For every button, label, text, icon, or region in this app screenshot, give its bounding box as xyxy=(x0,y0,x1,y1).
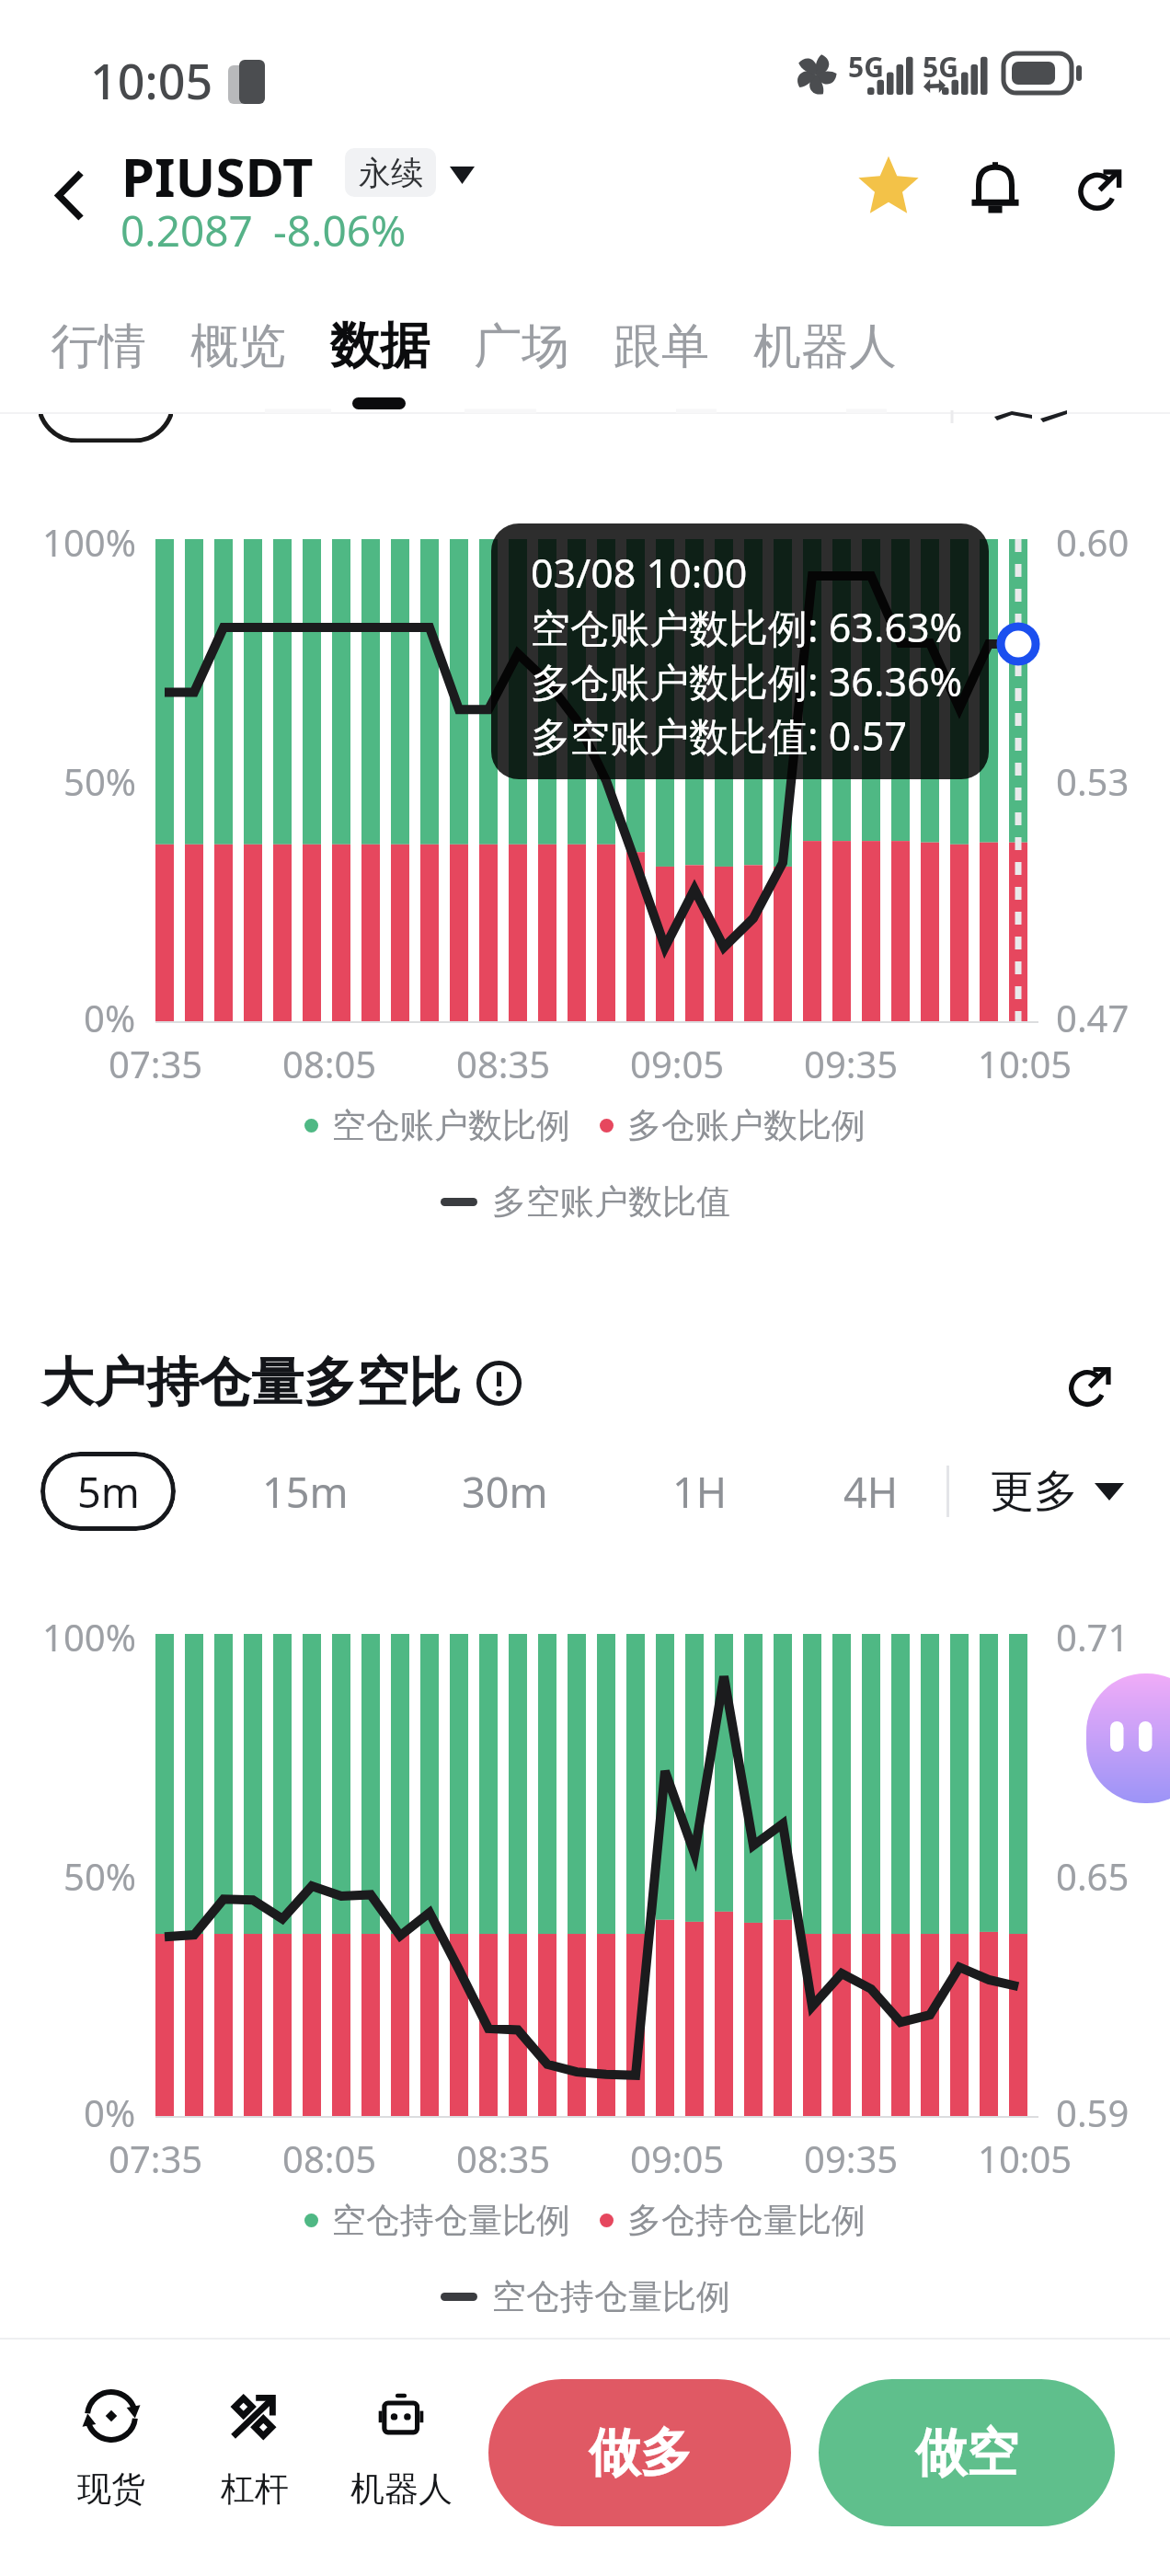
staticText: 空仓持仓量比例 xyxy=(332,2199,570,2242)
staticText: 5m xyxy=(77,1464,140,1520)
button[interactable]: Alerts xyxy=(957,147,1034,224)
staticText: 更多 xyxy=(990,1464,1078,1519)
staticText: 4H xyxy=(843,1464,899,1520)
staticText: 5G xyxy=(848,48,884,86)
button[interactable]: 跟单 xyxy=(599,307,724,386)
button[interactable]: 机器人 xyxy=(327,2388,475,2511)
staticText: 0.71 xyxy=(1056,1612,1130,1662)
staticText: 空仓账户数比例 xyxy=(332,1104,570,1147)
staticText: 多仓持仓量比例 xyxy=(627,2199,866,2242)
button[interactable]: 15m xyxy=(235,1452,368,1531)
button[interactable]: 数据 xyxy=(315,305,444,386)
button[interactable]: 5m xyxy=(40,1452,176,1531)
button[interactable]: 现货 xyxy=(38,2388,185,2511)
button[interactable]: 做空 xyxy=(819,2379,1115,2526)
staticText: 07:35 xyxy=(109,1039,203,1088)
staticText: 做多 xyxy=(589,2421,692,2486)
staticText: 概览 xyxy=(190,316,286,377)
staticText: 08:35 xyxy=(456,2133,551,2183)
button[interactable]: 行情 xyxy=(36,307,161,386)
staticText: 0.53 xyxy=(1056,756,1130,806)
staticText: 多仓账户数比例: 36.36% xyxy=(531,654,963,708)
staticText: 09:05 xyxy=(630,1039,725,1088)
staticText: 多仓账户数比例 xyxy=(627,1104,866,1147)
staticText: 100% xyxy=(42,517,136,567)
staticText: 0% xyxy=(84,2087,136,2137)
staticText: 机器人 xyxy=(350,2467,453,2511)
staticText: 08:35 xyxy=(456,1039,551,1088)
button[interactable]: Info xyxy=(465,1349,533,1417)
staticText: 10:05 xyxy=(978,2133,1072,2183)
button[interactable]: Favorite xyxy=(850,147,927,224)
staticText: -8.06% xyxy=(273,201,407,259)
staticText: 永续 xyxy=(359,153,423,193)
staticText: 大户持仓量多空比 xyxy=(41,1350,461,1416)
staticText: 03/08 10:00 xyxy=(531,546,748,600)
button[interactable]: 做多 xyxy=(488,2379,791,2526)
button[interactable]: 4H xyxy=(816,1452,949,1531)
staticText: PIUSDT xyxy=(121,140,314,213)
staticText: 0.59 xyxy=(1056,2087,1130,2137)
button[interactable]: 30m xyxy=(434,1452,568,1531)
staticText: 数据 xyxy=(330,315,430,377)
button[interactable]: Share xyxy=(1063,147,1141,224)
staticText: 行情 xyxy=(51,316,146,377)
staticText: 08:05 xyxy=(282,1039,377,1088)
staticText: 50% xyxy=(63,756,136,806)
button[interactable]: Back xyxy=(33,158,107,232)
button[interactable]: 1H xyxy=(645,1452,778,1531)
staticText: 1H xyxy=(672,1464,728,1520)
staticText: 15m xyxy=(262,1464,349,1520)
staticText: 10:05 xyxy=(90,48,213,113)
staticText: 09:05 xyxy=(630,2133,725,2183)
staticText: 07:35 xyxy=(109,2133,203,2183)
staticText: 机器人 xyxy=(753,316,897,377)
staticText: 广场 xyxy=(474,316,569,377)
staticText: 0.60 xyxy=(1056,517,1130,567)
staticText: 0.2087 xyxy=(120,201,253,259)
staticText: 空仓账户数比例: 63.63% xyxy=(531,600,963,654)
button[interactable]: 机器人 xyxy=(739,307,912,386)
staticText: 50% xyxy=(63,1851,136,1901)
staticText: 30m xyxy=(462,1464,548,1520)
staticText: 08:05 xyxy=(282,2133,377,2183)
button[interactable]: 更多 xyxy=(990,1452,1124,1531)
staticText: 多空账户数比值 xyxy=(492,1180,730,1224)
staticText: 0.65 xyxy=(1056,1851,1130,1901)
staticText: 现货 xyxy=(77,2467,145,2511)
staticText: 杠杆 xyxy=(221,2467,289,2511)
button[interactable]: AI assistant xyxy=(1086,1673,1170,1803)
staticText: 多空账户数比值: 0.57 xyxy=(531,708,908,763)
staticText: 0% xyxy=(84,993,136,1042)
staticText: 5G xyxy=(923,48,958,86)
staticText: 0.47 xyxy=(1056,993,1130,1042)
button[interactable]: 广场 xyxy=(459,307,584,386)
button[interactable]: Share chart xyxy=(1056,1349,1128,1417)
staticText: 做空 xyxy=(915,2421,1018,2486)
button[interactable]: 概览 xyxy=(176,307,301,386)
button[interactable]: 永续 xyxy=(345,148,436,197)
staticText: 空仓持仓量比例 xyxy=(492,2275,730,2318)
staticText: 09:35 xyxy=(804,2133,899,2183)
staticText: 跟单 xyxy=(614,316,709,377)
staticText: 10:05 xyxy=(978,1039,1072,1088)
staticText: 100% xyxy=(42,1612,136,1662)
button[interactable]: 杠杆 xyxy=(181,2388,328,2511)
staticText: 09:35 xyxy=(804,1039,899,1088)
